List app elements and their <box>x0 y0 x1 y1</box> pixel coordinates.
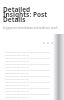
staticText: Engagement breakdown and audience reach <box>3 26 58 30</box>
staticText: Lorem ipsum dolor sit amet consectetur a… <box>5 80 52 86</box>
staticText: Detailed Insights: Post Details <box>3 5 59 24</box>
staticText: Lorem ipsum dolor sit amet consectetur a… <box>5 74 52 80</box>
staticText: Lorem ipsum dolor sit amet consectetur a… <box>5 56 52 62</box>
staticText: Lorem ipsum dolor sit amet consectetur a… <box>5 86 52 92</box>
staticText: Lorem ipsum dolor sit amet consectetur a… <box>5 68 52 74</box>
staticText: Lorem ipsum dolor sit amet consectetur a… <box>5 50 52 56</box>
staticText: Lorem ipsum dolor sit amet consectetur a… <box>5 92 52 98</box>
staticText: Lorem ipsum dolor sit amet consectetur a… <box>5 62 52 68</box>
